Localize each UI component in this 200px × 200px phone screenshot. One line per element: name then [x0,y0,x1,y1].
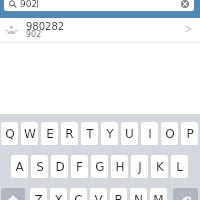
button[interactable]: V [90,188,107,200]
staticText: 980282 [26,21,65,33]
staticText: N [134,193,143,200]
staticText: O [165,127,175,141]
staticText: B [114,193,123,200]
button[interactable]: 902 [4,0,194,11]
button[interactable]: Z [30,188,47,200]
staticText: Z [34,193,43,200]
button[interactable]: F [71,155,88,178]
staticText: E [46,127,54,141]
staticText: 902 [26,30,42,39]
button[interactable]: 980282 [0,17,200,42]
staticText: I [148,127,152,141]
staticText: R [65,127,74,141]
button[interactable]: W [21,122,38,145]
staticText: F [76,160,83,174]
button[interactable]: X [50,188,67,200]
button[interactable]: E [41,122,58,145]
staticText: S [36,160,44,174]
staticText: U [125,127,134,141]
staticText: T [86,127,94,141]
staticText: P [186,127,194,141]
button[interactable]: C [70,188,87,200]
button[interactable]: N [130,188,147,200]
staticText: D [55,160,65,174]
button[interactable]: M [150,188,167,200]
button[interactable]: Q [1,122,18,145]
button[interactable]: K [151,155,168,178]
button[interactable]: U [121,122,138,145]
staticText: X [54,193,63,200]
staticText: A [15,160,24,174]
button[interactable]: Y [101,122,118,145]
button[interactable]: D [51,155,68,178]
button[interactable]: Backspace [173,188,198,200]
staticText: J [138,160,142,174]
staticText: W [24,127,36,141]
staticText: V [94,193,103,200]
staticText: G [95,160,105,174]
button[interactable]: B [110,188,127,200]
staticText: Q [5,127,15,141]
button[interactable]: O [161,122,178,145]
button[interactable]: J [131,155,148,178]
staticText: H [115,160,125,174]
staticText: Y [106,127,114,141]
button[interactable]: Shift [1,188,25,200]
button[interactable]: H [111,155,128,178]
button[interactable]: G [91,155,108,178]
staticText: K [156,160,164,174]
button[interactable]: P [181,122,198,145]
staticText: C [74,193,83,200]
staticText: M [153,193,164,200]
button[interactable]: R [61,122,78,145]
button[interactable]: S [31,155,48,178]
button[interactable]: A [11,155,28,178]
staticText: L [176,160,183,174]
button[interactable]: I [141,122,158,145]
button[interactable]: T [81,122,98,145]
staticText: 902 [20,0,38,9]
button[interactable]: L [171,155,188,178]
button[interactable]: Clear search [181,0,189,8]
